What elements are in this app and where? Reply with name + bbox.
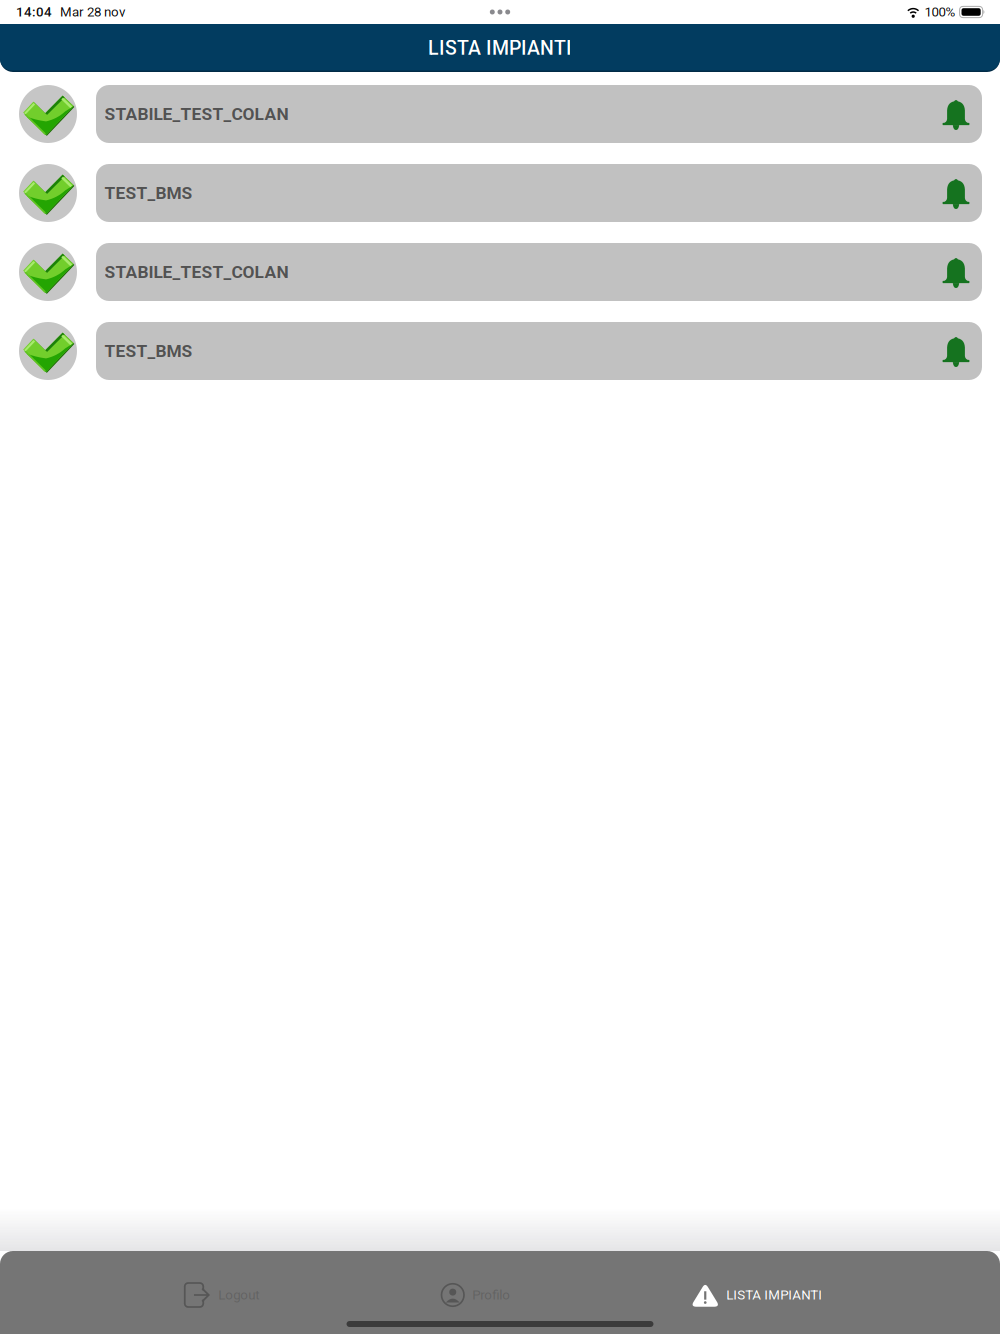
staticText: STABILE_TEST_COLAN (104, 104, 288, 124)
staticText: Profilo (472, 1287, 510, 1303)
button[interactable]: Profilo (441, 1267, 510, 1323)
button[interactable]: LISTA IMPIANTI (692, 1267, 822, 1323)
staticText: Logout (218, 1287, 259, 1303)
staticText: LISTA IMPIANTI (726, 1287, 822, 1303)
button[interactable]: Logout (185, 1267, 259, 1323)
staticText: STABILE_TEST_COLAN (104, 262, 288, 282)
staticText: Mar 28 nov (60, 4, 125, 20)
staticText: LISTA IMPIANTI (428, 37, 572, 59)
staticText: 14:04 (16, 4, 52, 20)
button[interactable]: STABILE_TEST_COLAN (0, 243, 1000, 301)
staticText: 100% (924, 4, 955, 20)
button[interactable]: TEST_BMS (0, 322, 1000, 380)
staticText: TEST_BMS (104, 341, 192, 361)
button[interactable]: TEST_BMS (0, 164, 1000, 222)
staticText: TEST_BMS (104, 183, 192, 203)
button[interactable]: STABILE_TEST_COLAN (0, 85, 1000, 143)
